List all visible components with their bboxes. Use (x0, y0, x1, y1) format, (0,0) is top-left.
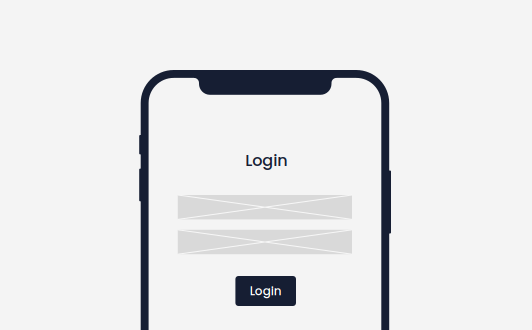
button[interactable]: Login (235, 276, 296, 306)
staticText: Login (250, 283, 282, 299)
staticText: Login (245, 149, 287, 172)
